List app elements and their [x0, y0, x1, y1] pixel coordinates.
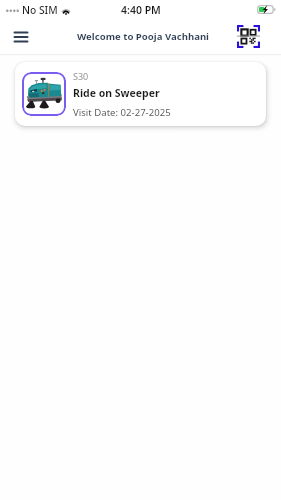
staticText: Welcome to Pooja Vachhani [77, 30, 209, 43]
button[interactable]: Open navigation menu [8, 24, 34, 50]
button[interactable]: S30 [15, 62, 266, 126]
staticText: 4:40 PM [121, 3, 161, 17]
staticText: Ride on Sweeper [73, 86, 160, 100]
staticText: S30 [73, 70, 89, 82]
staticText: No SIM [22, 3, 58, 17]
staticText: Visit Date: 02-27-2025 [73, 106, 171, 119]
button[interactable]: Scan QR code [237, 25, 260, 48]
